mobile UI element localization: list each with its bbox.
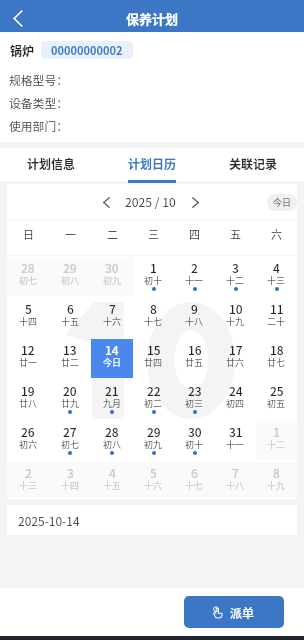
staticText: 3	[232, 259, 239, 275]
button[interactable]: 7	[215, 462, 256, 498]
staticText: 19	[21, 382, 35, 398]
button[interactable]: 9	[174, 298, 215, 337]
button[interactable]: 30	[174, 421, 215, 460]
staticText: 5	[25, 300, 32, 316]
staticText: 使用部门：	[9, 117, 68, 133]
staticText: 25	[270, 382, 284, 398]
button[interactable]: 12	[7, 339, 49, 378]
button[interactable]: 4	[256, 257, 297, 296]
button[interactable]: 30	[91, 257, 133, 296]
staticText: 1	[273, 423, 280, 439]
button[interactable]: 8	[133, 298, 174, 337]
staticText: 十八	[185, 315, 204, 328]
button[interactable]: 15	[133, 339, 174, 378]
button[interactable]: 18	[256, 339, 297, 378]
button[interactable]: 11	[256, 298, 297, 337]
staticText: 初二	[144, 397, 163, 410]
staticText: 23	[188, 382, 202, 398]
staticText: 五	[230, 226, 241, 242]
staticText: 十七	[144, 315, 163, 328]
staticText: 锅炉	[10, 42, 35, 59]
staticText: 29	[63, 259, 77, 275]
staticText: 6	[67, 300, 74, 316]
button[interactable]: 16	[174, 339, 215, 378]
staticText: 十三	[267, 274, 286, 287]
staticText: 4	[109, 464, 116, 480]
button[interactable]: 2	[7, 462, 49, 498]
button[interactable]: 6	[174, 462, 215, 498]
staticText: 十一	[185, 274, 204, 287]
button[interactable]: 19	[7, 380, 49, 419]
staticText: 四	[189, 226, 200, 242]
button[interactable]: 28	[7, 257, 49, 296]
staticText: 初四	[226, 397, 245, 410]
button[interactable]: 5	[7, 298, 49, 337]
staticText: 2	[191, 259, 198, 275]
staticText: 今日	[273, 196, 292, 209]
button[interactable]: 29	[49, 257, 91, 296]
staticText: 初三	[185, 397, 204, 410]
button[interactable]: 5	[133, 462, 174, 498]
button[interactable]: 派单	[184, 596, 284, 628]
staticText: 初十	[144, 274, 163, 287]
staticText: 关联记录	[229, 155, 278, 172]
button[interactable]: 25	[256, 380, 297, 419]
button[interactable]: 关联记录	[203, 148, 304, 181]
staticText: 廿二	[61, 356, 80, 369]
staticText: 12	[21, 341, 35, 357]
staticText: 十七	[185, 479, 204, 492]
button[interactable]: 计划日历	[102, 148, 203, 181]
button[interactable]: 27	[49, 421, 91, 460]
staticText: 29	[147, 423, 161, 439]
staticText: 计划日历	[128, 155, 177, 172]
button[interactable]: 14	[91, 339, 133, 378]
button[interactable]: Next month	[185, 192, 205, 212]
button[interactable]: 22	[133, 380, 174, 419]
button[interactable]: 4	[91, 462, 133, 498]
button[interactable]: 29	[133, 421, 174, 460]
button[interactable]: 17	[215, 339, 256, 378]
staticText: 十六	[103, 315, 122, 328]
staticText: 三	[148, 226, 159, 242]
staticText: 日	[23, 226, 34, 242]
button[interactable]: 20	[49, 380, 91, 419]
button[interactable]: 1	[133, 257, 174, 296]
button[interactable]: 3	[215, 257, 256, 296]
staticText: 21	[105, 382, 119, 398]
staticText: 二十	[267, 315, 286, 328]
staticText: 初九	[103, 274, 122, 287]
button[interactable]: 23	[174, 380, 215, 419]
button[interactable]: 10	[215, 298, 256, 337]
staticText: 1	[150, 259, 157, 275]
button[interactable]: 21	[91, 380, 133, 419]
button[interactable]: 7	[91, 298, 133, 337]
staticText: 十九	[267, 479, 286, 492]
staticText: 7	[109, 300, 116, 316]
button[interactable]: 6	[49, 298, 91, 337]
button[interactable]: Back	[0, 0, 36, 32]
button[interactable]: 今日	[267, 194, 297, 211]
button[interactable]: 8	[256, 462, 297, 498]
button[interactable]: 3	[49, 462, 91, 498]
staticText: 6	[191, 464, 198, 480]
staticText: 31	[229, 423, 243, 439]
button[interactable]: 2	[174, 257, 215, 296]
staticText: 初九	[144, 438, 163, 451]
staticText: 22	[147, 382, 161, 398]
button[interactable]: Previous month	[96, 192, 116, 212]
staticText: 16	[188, 341, 202, 357]
button[interactable]: 1	[256, 421, 297, 460]
button[interactable]: 31	[215, 421, 256, 460]
staticText: 十五	[103, 479, 122, 492]
staticText: 初七	[61, 438, 80, 451]
staticText: 二	[107, 226, 118, 242]
button[interactable]: 13	[49, 339, 91, 378]
button[interactable]: 26	[7, 421, 49, 460]
button[interactable]: 计划信息	[0, 148, 102, 181]
staticText: 28	[105, 423, 119, 439]
staticText: 十二	[226, 274, 245, 287]
staticText: 初七	[19, 274, 38, 287]
staticText: 廿八	[19, 397, 38, 410]
button[interactable]: 24	[215, 380, 256, 419]
button[interactable]: 28	[91, 421, 133, 460]
